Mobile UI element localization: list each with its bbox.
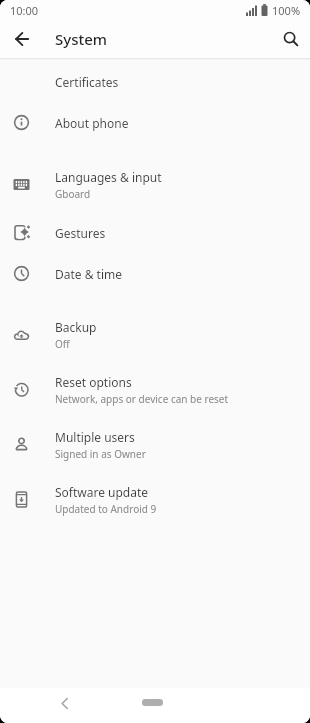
button[interactable]: Backup xyxy=(0,307,310,362)
button[interactable]: Languages & input xyxy=(0,157,310,212)
staticText: About phone xyxy=(55,115,129,131)
button[interactable] xyxy=(282,30,300,48)
staticText: 10:00 xyxy=(10,3,39,18)
button[interactable]: Certificates xyxy=(0,61,310,102)
staticText: Updated to Android 9 xyxy=(55,502,157,516)
staticText: Reset options xyxy=(55,374,132,390)
button[interactable]: Multiple users xyxy=(0,417,310,472)
staticText: Software update xyxy=(55,484,149,500)
staticText: Network, apps or device can be reset xyxy=(55,392,229,406)
staticText: Gboard xyxy=(55,187,91,201)
button[interactable] xyxy=(13,30,31,48)
staticText: Date & time xyxy=(55,266,123,282)
staticText: Certificates xyxy=(55,74,119,90)
staticText: Multiple users xyxy=(55,429,135,445)
button[interactable]: Reset options xyxy=(0,362,310,417)
button[interactable] xyxy=(57,694,71,712)
button[interactable]: About phone xyxy=(0,102,310,143)
staticText: System xyxy=(55,29,108,49)
staticText: Signed in as Owner xyxy=(55,447,146,461)
staticText: 100% xyxy=(272,3,301,18)
button[interactable]: Date & time xyxy=(0,253,310,294)
staticText: Languages & input xyxy=(55,169,162,185)
staticText: Gestures xyxy=(55,225,106,241)
button[interactable]: Gestures xyxy=(0,212,310,253)
staticText: Backup xyxy=(55,319,97,335)
staticText: Off xyxy=(55,337,70,351)
button[interactable] xyxy=(142,699,163,706)
button[interactable]: Software update xyxy=(0,472,310,527)
